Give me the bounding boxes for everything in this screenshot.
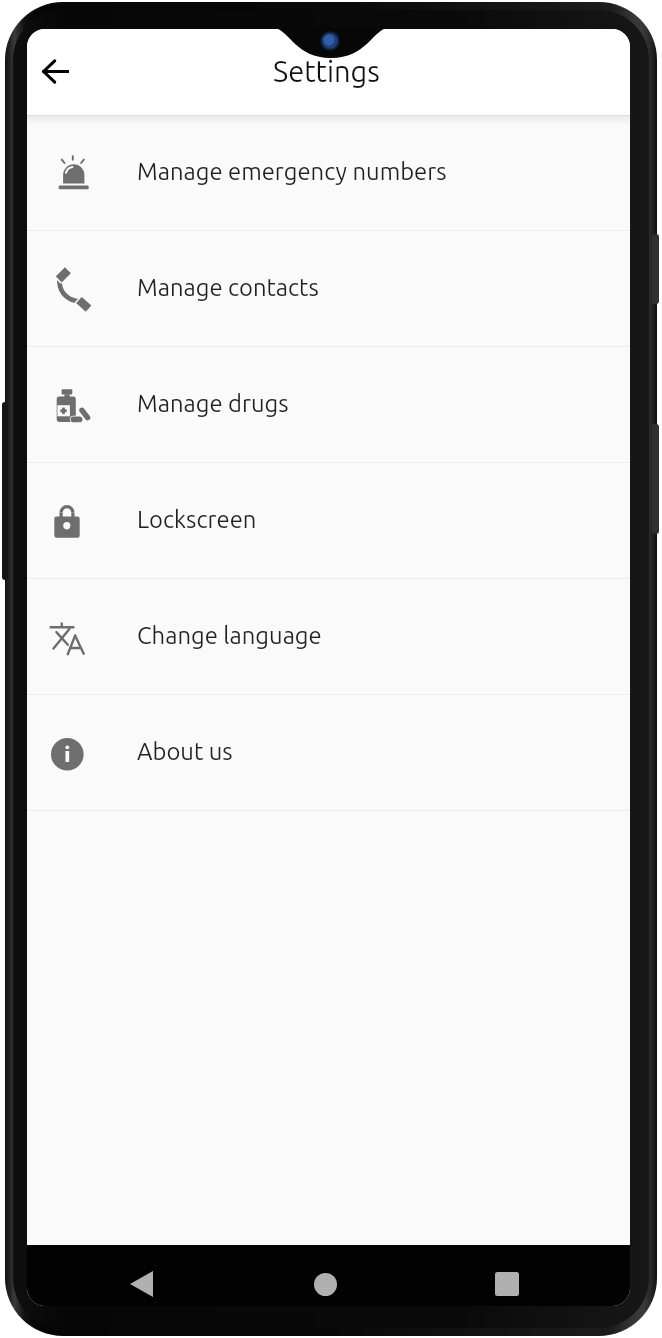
staticText: Settings (273, 55, 380, 88)
staticText: Change language (137, 622, 322, 649)
button[interactable]: Lockscreen (27, 463, 630, 578)
button[interactable]: Manage drugs (27, 347, 630, 462)
button[interactable]: Manage contacts (27, 231, 630, 346)
button[interactable]: Change language (27, 579, 630, 694)
button[interactable]: About us (27, 695, 630, 810)
button[interactable]: Manage emergency numbers (27, 115, 630, 230)
button[interactable]: Recent apps (482, 1266, 531, 1302)
staticText: About us (137, 738, 233, 765)
button[interactable]: Home (300, 1266, 350, 1302)
button[interactable]: Back (117, 1266, 166, 1302)
staticText: Manage emergency numbers (137, 158, 447, 185)
staticText: Manage contacts (137, 274, 319, 301)
staticText: Lockscreen (137, 506, 257, 533)
staticText: Manage drugs (137, 390, 289, 417)
button[interactable]: Back (28, 44, 82, 98)
